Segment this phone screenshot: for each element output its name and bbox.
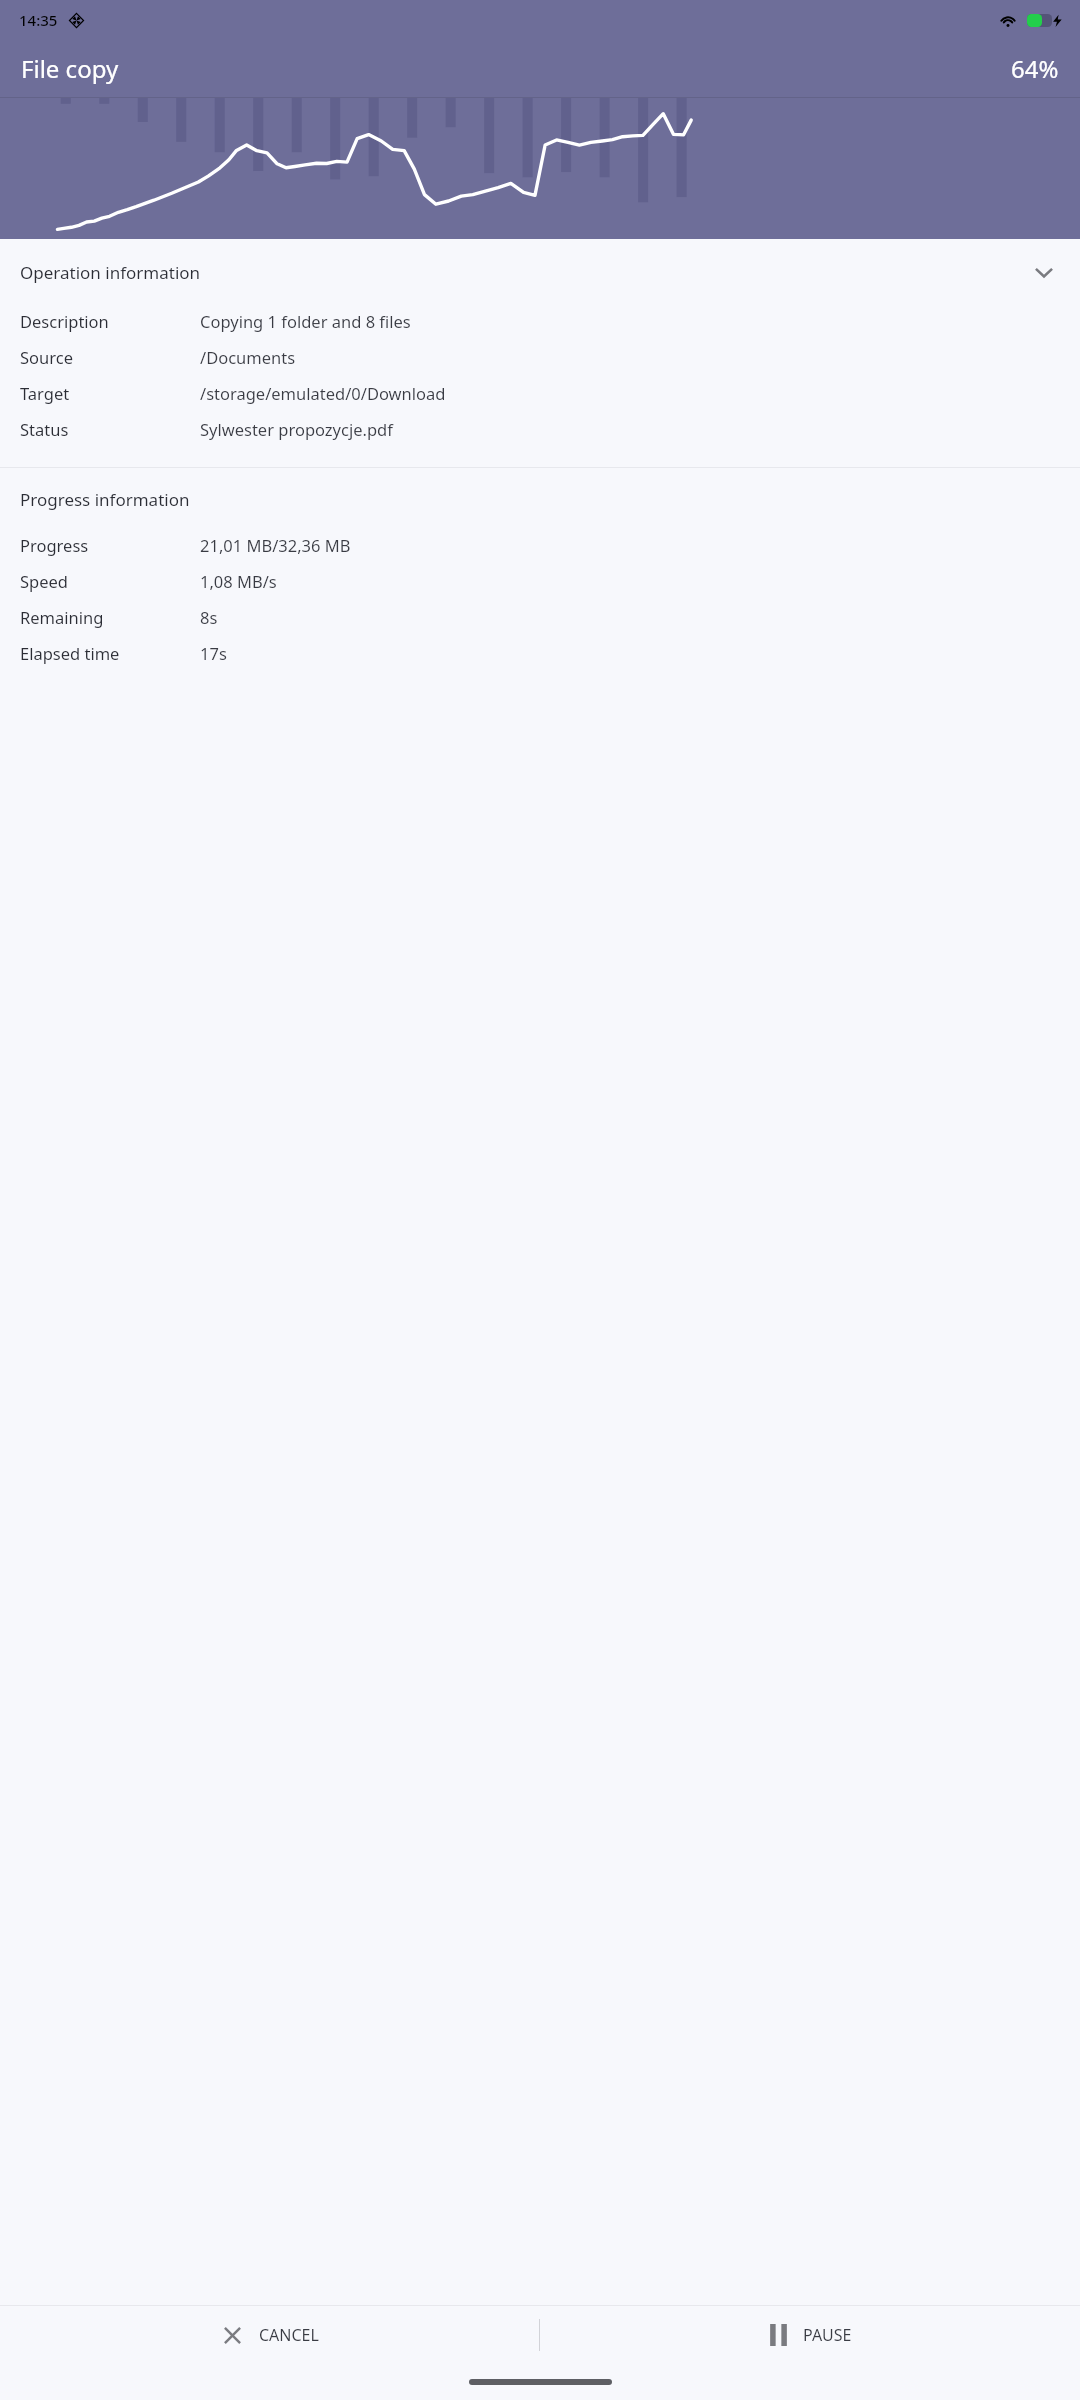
staticText: Description <box>20 310 200 332</box>
staticText: 1,08 MB/s <box>200 570 277 592</box>
staticText: Remaining <box>20 606 200 628</box>
staticText: PAUSE <box>803 2324 852 2346</box>
staticText: Copying 1 folder and 8 files <box>200 310 411 332</box>
staticText: Sylwester propozycje.pdf <box>200 418 393 440</box>
staticText: Operation information <box>20 261 1028 284</box>
button[interactable]: PAUSE <box>540 2306 1080 2364</box>
staticText: Progress information <box>20 488 190 511</box>
staticText: CANCEL <box>259 2324 319 2346</box>
staticText: Status <box>20 418 200 440</box>
other: Collapse operation information <box>1028 256 1060 288</box>
button[interactable]: Operation information <box>0 239 1080 303</box>
staticText: Target <box>20 382 200 404</box>
staticText: 8s <box>200 606 218 628</box>
staticText: /storage/emulated/0/Download <box>200 382 446 404</box>
staticText: File copy <box>21 52 119 85</box>
staticText: Speed <box>20 570 200 592</box>
staticText: Elapsed time <box>20 642 200 664</box>
staticText: Source <box>20 346 200 368</box>
staticText: Progress <box>20 534 200 556</box>
staticText: 14:35 <box>19 10 58 30</box>
staticText: /Documents <box>200 346 296 368</box>
staticText: 21,01 MB/32,36 MB <box>200 534 351 556</box>
button[interactable]: CANCEL <box>0 2306 539 2364</box>
staticText: 64% <box>1011 52 1059 85</box>
staticText: 17s <box>200 642 227 664</box>
